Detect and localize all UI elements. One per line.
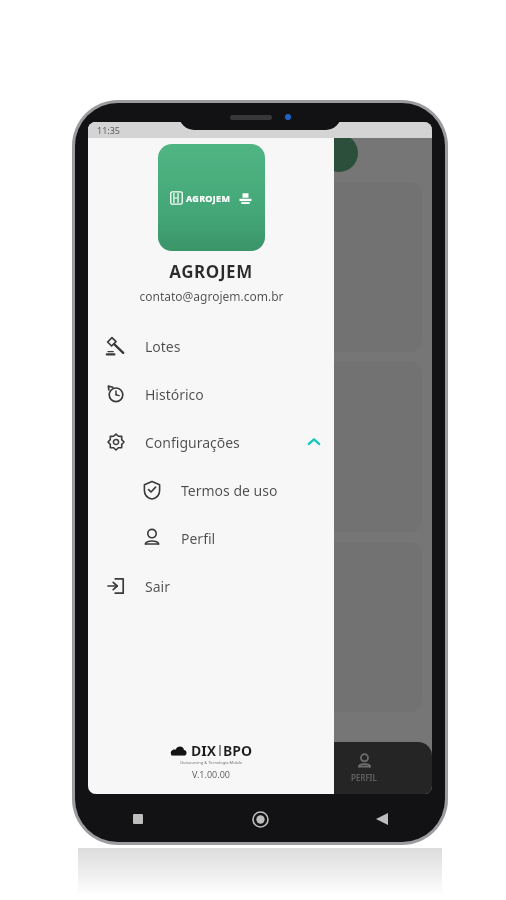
staticText: …ES [173, 491, 197, 507]
staticText: Sair [145, 577, 170, 596]
staticText: …cadastrada, [112, 226, 194, 244]
staticText: Perfil [181, 529, 216, 548]
button[interactable]: …ES [110, 302, 260, 336]
staticText: …s - TO [112, 586, 157, 604]
staticText: Termos de uso [181, 481, 278, 500]
staticText: contato@agrojem.com.br [139, 288, 284, 304]
button[interactable]: Recents [127, 808, 149, 830]
staticText: AGROJEM [186, 192, 231, 204]
staticText: Outsourcing & Tecnologia Mobile [180, 760, 243, 765]
button[interactable]: Back [371, 808, 393, 830]
button[interactable]: Configurações [88, 418, 334, 466]
staticText: 11:35 [97, 124, 121, 136]
staticText: Lotes [145, 337, 181, 356]
button[interactable]: Sair [88, 562, 334, 610]
button[interactable]: Home [249, 808, 271, 830]
staticText: Histórico [145, 385, 204, 404]
staticText: AGROJEM [169, 260, 253, 283]
staticText: Configurações [145, 433, 240, 452]
staticText: V.1.00.00 [192, 768, 230, 780]
button[interactable]: Termos de uso [88, 466, 334, 514]
button[interactable]: Lotes [88, 322, 334, 370]
staticText: DIX [191, 741, 217, 760]
staticText: PERFIL [351, 772, 377, 783]
staticText: BPO [223, 741, 253, 760]
staticText: …O [112, 424, 133, 442]
button[interactable]: Perfil [88, 514, 334, 562]
button[interactable]: …ES [110, 482, 260, 516]
button[interactable]: Histórico [88, 370, 334, 418]
